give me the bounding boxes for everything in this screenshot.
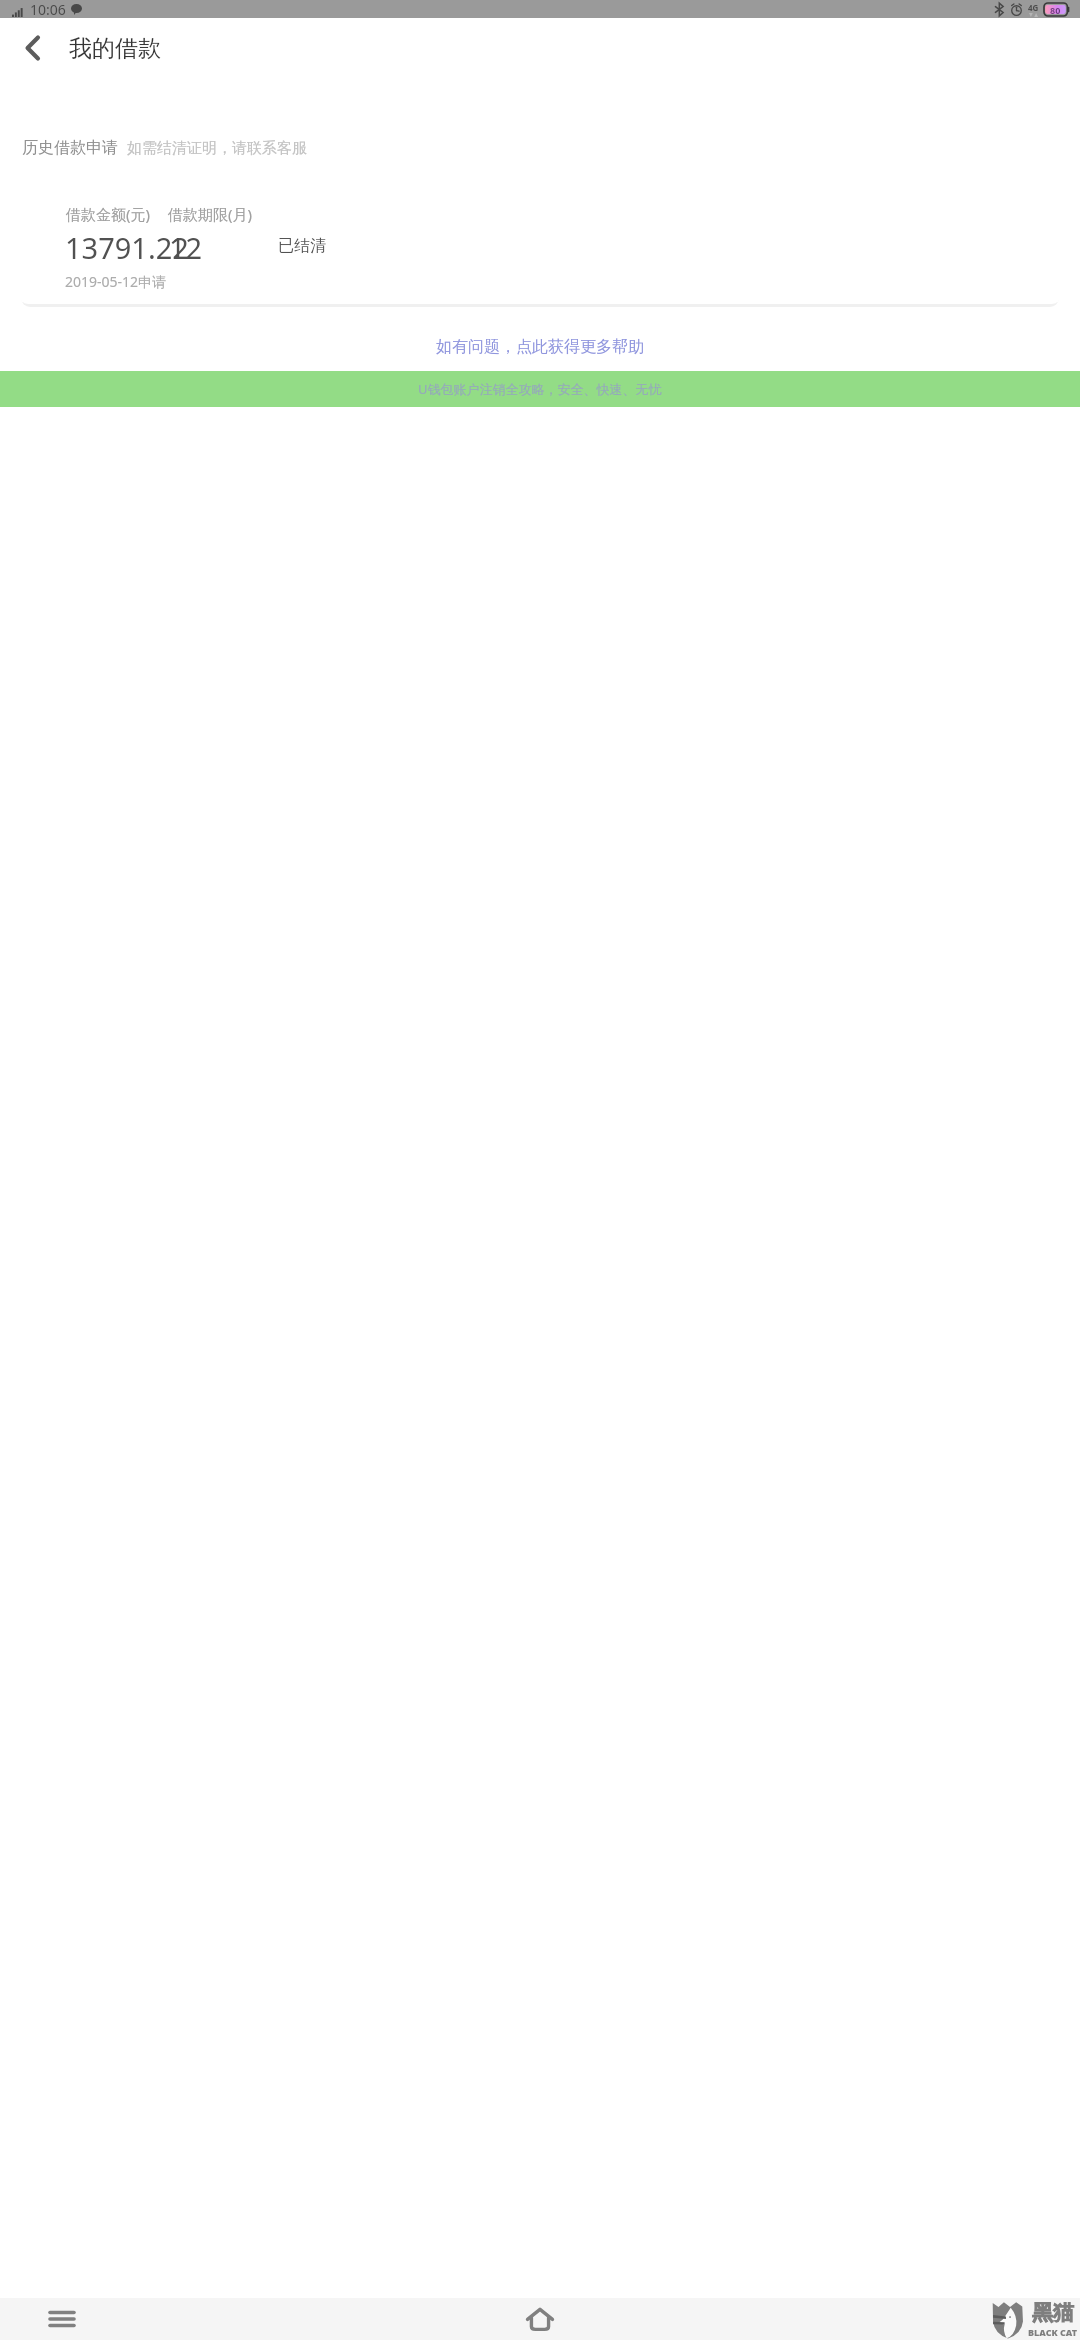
staticText: BLACK CAT xyxy=(1028,2326,1078,2338)
staticText: 借款金额(元) xyxy=(66,204,151,224)
button[interactable]: Back xyxy=(8,24,56,72)
button[interactable]: 借款金额(元) xyxy=(19,182,1061,304)
staticText: 2019-05-12申请 xyxy=(65,272,167,291)
button[interactable]: 如有问题，点此获得更多帮助 xyxy=(428,333,652,361)
button[interactable]: Home xyxy=(516,2298,564,2340)
staticText: U钱包账户注销全攻略，安全、快速、无忧 xyxy=(418,380,662,398)
staticText: 4G xyxy=(1028,2,1039,13)
staticText: 10:06 xyxy=(30,0,66,18)
staticText: 12 xyxy=(169,228,203,267)
button[interactable]: Menu xyxy=(38,2298,86,2340)
staticText: 13791.22 xyxy=(65,228,189,267)
staticText: 借款期限(月) xyxy=(168,204,253,224)
button[interactable]: U钱包账户注销全攻略，安全、快速、无忧 xyxy=(0,371,1080,407)
staticText: 80 xyxy=(1050,4,1061,16)
staticText: 历史借款申请 xyxy=(22,138,118,158)
staticText: 我的借款 xyxy=(69,34,161,63)
staticText: 黑猫 xyxy=(1032,2300,1074,2326)
staticText: 如需结清证明，请联系客服 xyxy=(127,139,307,158)
staticText: 已结清 xyxy=(278,236,326,256)
staticText: 如有问题，点此获得更多帮助 xyxy=(436,337,644,357)
